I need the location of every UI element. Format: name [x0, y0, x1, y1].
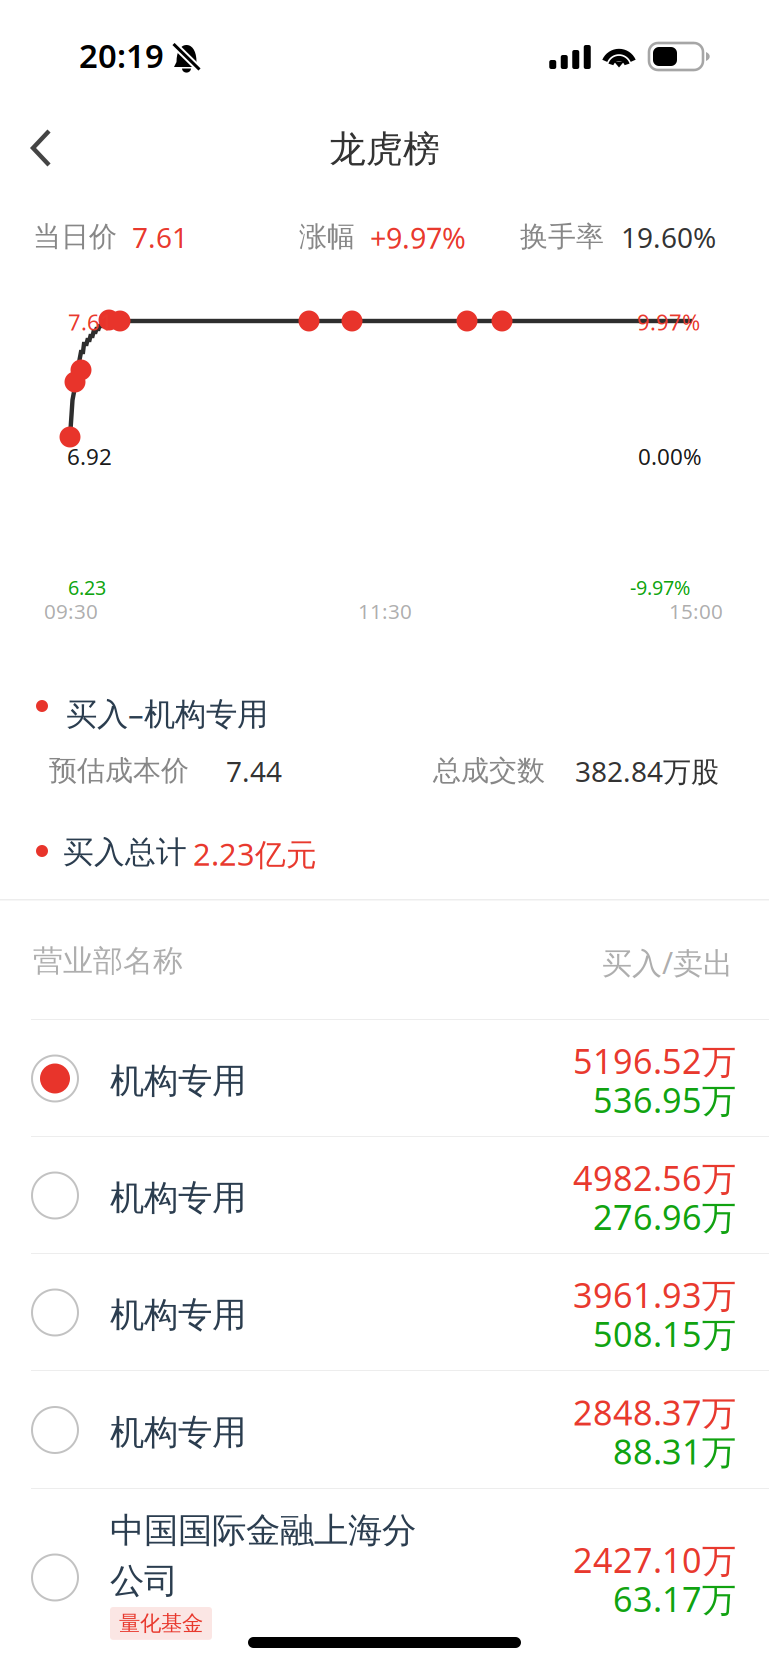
staticText: -9.97% [630, 574, 690, 601]
staticText: 5196.52万 [573, 1037, 736, 1084]
staticText: 7.61 [132, 218, 188, 256]
staticText: 88.31万 [613, 1428, 736, 1474]
staticText: 63.17万 [613, 1575, 736, 1622]
staticText: 2848.37万 [573, 1389, 736, 1435]
staticText: 公司 [110, 1559, 178, 1603]
staticText: 508.15万 [593, 1310, 736, 1357]
staticText: 机构专用 [110, 1293, 246, 1337]
staticText: 中国国际金融上海分 [110, 1509, 416, 1552]
staticText: 7.61 [68, 307, 113, 337]
staticText: 0.00% [638, 441, 702, 471]
staticText: 09:30 [44, 597, 98, 625]
staticText: 机构专用 [110, 1176, 246, 1220]
button[interactable]: 机构专用 [0, 1137, 769, 1254]
staticText: 机构专用 [110, 1059, 246, 1103]
button[interactable]: 机构专用 [0, 1254, 769, 1371]
staticText: 6.92 [67, 441, 112, 471]
staticText: 9.97% [637, 307, 700, 337]
staticText: +9.97% [370, 218, 466, 257]
staticText: 预估成本价 [49, 753, 189, 788]
staticText: 6.23 [68, 574, 106, 601]
staticText: 3961.93万 [573, 1271, 736, 1318]
staticText: 涨幅 [299, 219, 355, 254]
staticText: 536.95万 [593, 1076, 736, 1123]
staticText: 4982.56万 [573, 1154, 736, 1201]
staticText: 营业部名称 [33, 942, 183, 980]
staticText: 买入/卖出 [602, 942, 733, 983]
staticText: 2427.10万 [573, 1536, 736, 1583]
staticText: 7.44 [226, 752, 282, 790]
staticText: 量化基金 [119, 1610, 203, 1637]
staticText: 龙虎榜 [329, 126, 440, 172]
button[interactable]: Back [8, 108, 92, 188]
staticText: 总成交数 [433, 753, 545, 788]
staticText: 换手率 [520, 219, 604, 254]
staticText: 382.84万股 [575, 752, 719, 790]
staticText: 买入–机构专用 [66, 692, 268, 735]
staticText: 15:00 [669, 597, 723, 625]
button[interactable]: 机构专用 [0, 1371, 769, 1489]
staticText: 11:30 [358, 597, 412, 625]
button[interactable]: 机构专用 [0, 1020, 769, 1137]
staticText: 20:19 [79, 33, 164, 78]
staticText: 当日价 [33, 219, 117, 254]
staticText: 2.23亿元 [193, 833, 317, 875]
staticText: 19.60% [621, 218, 716, 256]
button[interactable]: 中国国际金融上海分 [0, 1489, 769, 1665]
staticText: 买入总计 [63, 833, 187, 872]
staticText: 276.96万 [593, 1193, 736, 1240]
staticText: 机构专用 [110, 1411, 246, 1454]
